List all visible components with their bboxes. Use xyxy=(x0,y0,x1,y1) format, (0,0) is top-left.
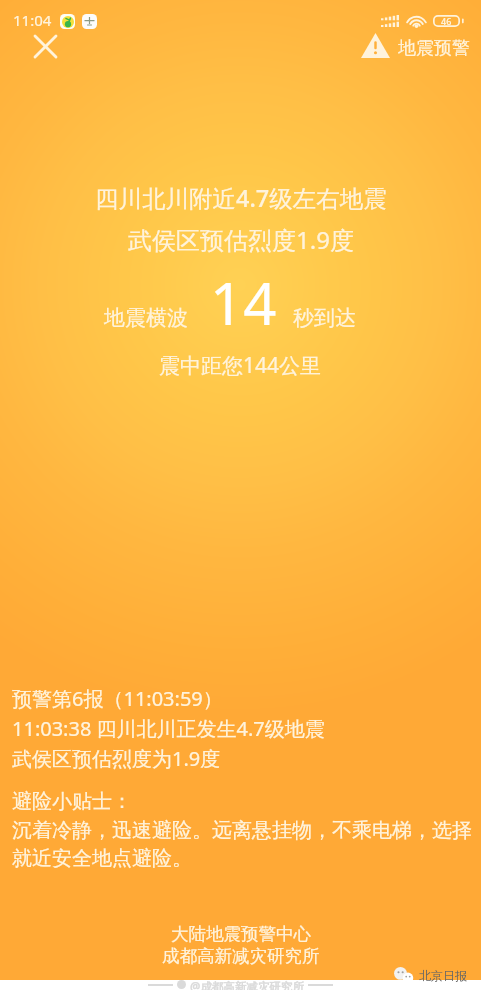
staticText: 地震预警 xyxy=(398,37,470,60)
staticText: 沉着冷静，迅速避险。远离悬挂物，不乘电梯，选择 xyxy=(12,818,472,843)
staticText: 11:03:38 四川北川正发生4.7级地震 xyxy=(12,715,325,742)
staticText: 武侯区预估烈度1.9度 xyxy=(128,223,354,256)
staticText: 避险小贴士： xyxy=(12,789,132,814)
button[interactable]: Close xyxy=(27,28,64,65)
staticText: 大陆地震预警中心 xyxy=(171,923,311,945)
staticText: 北京日报 xyxy=(419,968,467,983)
staticText: @成都高新减灾研究所 xyxy=(190,979,304,990)
staticText: 预警第6报（11:03:59） xyxy=(12,685,223,712)
staticText: 四川北川附近4.7级左右地震 xyxy=(95,182,387,214)
staticText: 地震横波 xyxy=(104,305,188,331)
staticText: 武侯区预估烈度为1.9度 xyxy=(12,745,221,772)
staticText: 秒到达 xyxy=(293,305,356,331)
staticText: 震中距您144公里 xyxy=(159,351,322,380)
staticText: 14 xyxy=(210,263,277,342)
staticText: 11:04 xyxy=(13,10,52,30)
staticText: 成都高新减灾研究所 xyxy=(162,945,320,967)
staticText: 就近安全地点避险。 xyxy=(12,846,192,871)
staticText: 46 xyxy=(441,15,452,27)
